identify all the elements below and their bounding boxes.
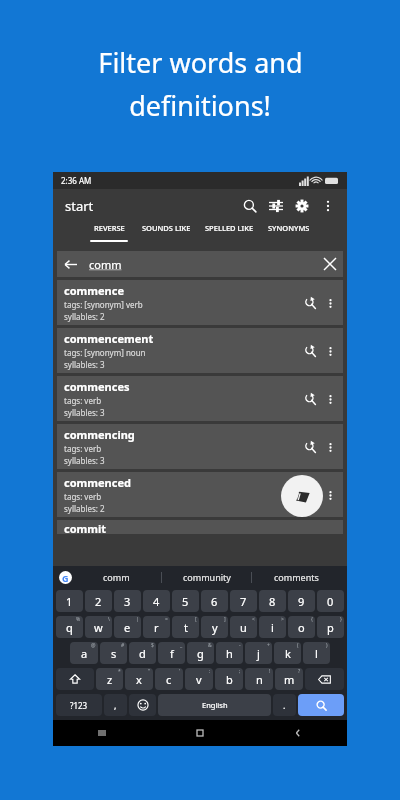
button[interactable]: Search again	[299, 436, 321, 458]
button[interactable]: Clear	[317, 251, 343, 277]
button[interactable]: 4	[143, 590, 170, 612]
button[interactable]: Search	[298, 694, 344, 716]
button[interactable]: g	[187, 642, 214, 664]
staticText: '	[179, 668, 181, 675]
button[interactable]: 2	[85, 590, 112, 612]
staticText: tags: verb	[64, 491, 102, 502]
button[interactable]: d	[129, 642, 156, 664]
staticText: tags: verb	[64, 395, 102, 406]
button[interactable]: Search again	[299, 484, 321, 506]
button[interactable]: Shift	[56, 668, 94, 690]
button[interactable]: z	[96, 668, 123, 690]
button[interactable]: b	[215, 668, 243, 690]
button[interactable]: w	[85, 616, 112, 638]
button[interactable]: ,	[104, 694, 127, 716]
button[interactable]: i	[259, 616, 286, 638]
button[interactable]: Tune	[263, 193, 289, 219]
staticText: :	[209, 668, 211, 675]
button[interactable]: More	[321, 294, 339, 312]
button[interactable]: p	[317, 616, 344, 638]
button[interactable]: SYNONYMS	[268, 223, 310, 240]
button[interactable]: s	[100, 642, 127, 664]
button[interactable]: t	[172, 616, 199, 638]
button[interactable]: l	[303, 642, 330, 664]
button[interactable]: Search again	[299, 292, 321, 314]
button[interactable]: Back	[249, 720, 347, 746]
button[interactable]: English	[158, 694, 271, 716]
button[interactable]: ?123	[56, 694, 102, 716]
staticText: syllables: 2	[64, 503, 105, 514]
button[interactable]: Back	[57, 251, 83, 277]
button[interactable]: More	[321, 486, 339, 504]
button[interactable]: y	[201, 616, 228, 638]
button[interactable]: comments	[252, 571, 341, 583]
button[interactable]: Settings	[289, 193, 315, 219]
button[interactable]: Dictionary	[281, 475, 323, 517]
button[interactable]: More	[321, 438, 339, 456]
button[interactable]: r	[143, 616, 170, 638]
staticText: #	[121, 642, 125, 649]
button[interactable]: commenced	[64, 472, 339, 517]
button[interactable]: x	[125, 668, 153, 690]
button[interactable]: h	[216, 642, 243, 664]
staticText: tags: [synonym] verb	[64, 299, 143, 310]
button[interactable]: 8	[259, 590, 286, 612]
button[interactable]: Search	[237, 193, 263, 219]
button[interactable]: comm	[72, 571, 161, 583]
button[interactable]: u	[230, 616, 257, 638]
button[interactable]: 9	[288, 590, 315, 612]
button[interactable]: commences	[64, 376, 339, 421]
button[interactable]: Google	[59, 571, 72, 584]
staticText: +	[267, 642, 270, 649]
button[interactable]: a	[70, 642, 98, 664]
button[interactable]: commit	[57, 520, 343, 534]
button[interactable]: n	[245, 668, 273, 690]
button[interactable]: commence	[64, 280, 339, 325]
staticText: {	[311, 616, 313, 623]
button[interactable]: commencement	[64, 328, 339, 373]
staticText: SOUNDS LIKE	[142, 223, 191, 233]
button[interactable]: v	[185, 668, 213, 690]
button[interactable]: More	[321, 390, 339, 408]
button[interactable]: More	[321, 342, 339, 360]
button[interactable]: Recents	[53, 720, 151, 746]
staticText: k	[285, 646, 291, 661]
button[interactable]: e	[114, 616, 141, 638]
button[interactable]: SOUNDS LIKE	[142, 223, 191, 240]
button[interactable]: Search again	[299, 388, 321, 410]
staticText: $	[151, 642, 154, 649]
staticText: SYNONYMS	[268, 223, 310, 233]
button[interactable]: Emoji	[129, 694, 156, 716]
button[interactable]: k	[274, 642, 301, 664]
button[interactable]: community	[162, 571, 251, 583]
staticText: SPELLED LIKE	[205, 223, 254, 233]
staticText: 5	[182, 594, 189, 609]
button[interactable]: More options	[315, 193, 341, 219]
button[interactable]: Back	[57, 251, 343, 277]
button[interactable]: o	[288, 616, 315, 638]
button[interactable]: 1	[56, 590, 83, 612]
staticText: 2:36 AM	[61, 175, 92, 186]
button[interactable]: q	[56, 616, 83, 638]
staticText: q	[66, 620, 73, 635]
staticText: 7	[240, 594, 247, 609]
button[interactable]: 5	[172, 590, 199, 612]
button[interactable]: REVERSE	[90, 223, 128, 242]
button[interactable]: 6	[201, 590, 228, 612]
staticText: x	[136, 672, 142, 687]
button[interactable]: Home	[151, 720, 249, 746]
button[interactable]: Search again	[299, 340, 321, 362]
button[interactable]: Backspace	[305, 668, 344, 690]
button[interactable]: 0	[317, 590, 344, 612]
button[interactable]: SPELLED LIKE	[205, 223, 254, 240]
button[interactable]: .	[273, 694, 296, 716]
button[interactable]: commencing	[64, 424, 339, 469]
button[interactable]: 3	[114, 590, 141, 612]
staticText: ,	[114, 699, 117, 711]
button[interactable]: c	[155, 668, 183, 690]
staticText: start	[65, 197, 94, 215]
button[interactable]: j	[245, 642, 272, 664]
button[interactable]: f	[158, 642, 185, 664]
button[interactable]: m	[275, 668, 303, 690]
button[interactable]: 7	[230, 590, 257, 612]
